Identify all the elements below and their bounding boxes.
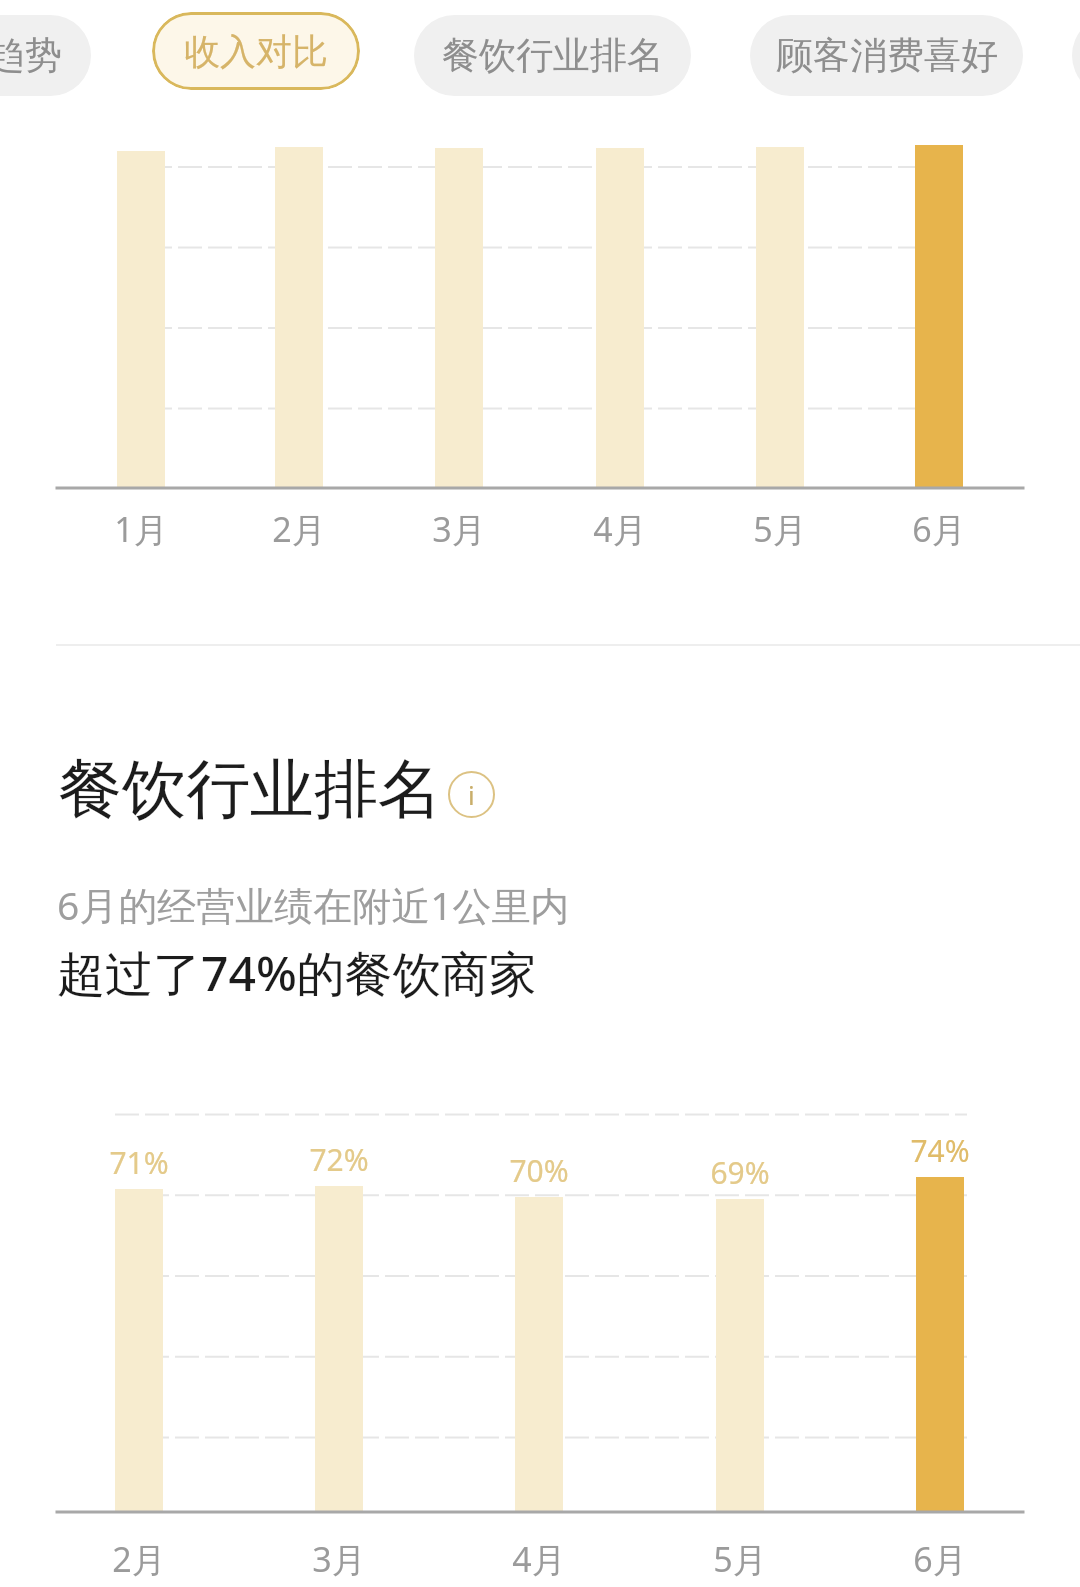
staticText: 2月 bbox=[199, 506, 399, 552]
staticText: 餐饮行业排名 bbox=[58, 749, 442, 830]
staticText: 2月 bbox=[39, 1536, 239, 1582]
staticText: 72% bbox=[239, 1139, 439, 1180]
staticText: 5月 bbox=[680, 506, 880, 552]
staticText: 5月 bbox=[640, 1536, 840, 1582]
staticText: 70% bbox=[439, 1150, 639, 1191]
button[interactable]: More tabs bbox=[1072, 15, 1080, 96]
staticText: i bbox=[468, 777, 475, 812]
staticText: 4月 bbox=[439, 1536, 639, 1582]
staticText: 营业趋势 bbox=[0, 32, 62, 79]
button[interactable]: 营业趋势 bbox=[0, 15, 91, 96]
staticText: 餐饮行业排名 bbox=[442, 32, 664, 79]
button[interactable]: 餐饮行业排名 bbox=[414, 15, 691, 96]
staticText: 顾客消费喜好 bbox=[776, 32, 998, 79]
staticText: 超过了74%的餐饮商家 bbox=[57, 940, 537, 1006]
button[interactable]: 顾客消费喜好 bbox=[750, 15, 1023, 96]
staticText: 6月的经营业绩在附近1公里内 bbox=[57, 878, 570, 931]
staticText: 71% bbox=[39, 1142, 239, 1183]
staticText: 3月 bbox=[239, 1536, 439, 1582]
staticText: 6月 bbox=[839, 506, 1039, 552]
button[interactable]: 收入对比 bbox=[152, 12, 360, 90]
staticText: 4月 bbox=[520, 506, 720, 552]
button[interactable]: Info bbox=[448, 771, 495, 818]
staticText: 6月 bbox=[840, 1536, 1040, 1582]
staticText: 3月 bbox=[359, 506, 559, 552]
staticText: 69% bbox=[640, 1152, 840, 1193]
staticText: 收入对比 bbox=[184, 29, 328, 74]
staticText: 1月 bbox=[41, 506, 241, 552]
staticText: 74% bbox=[840, 1130, 1040, 1171]
